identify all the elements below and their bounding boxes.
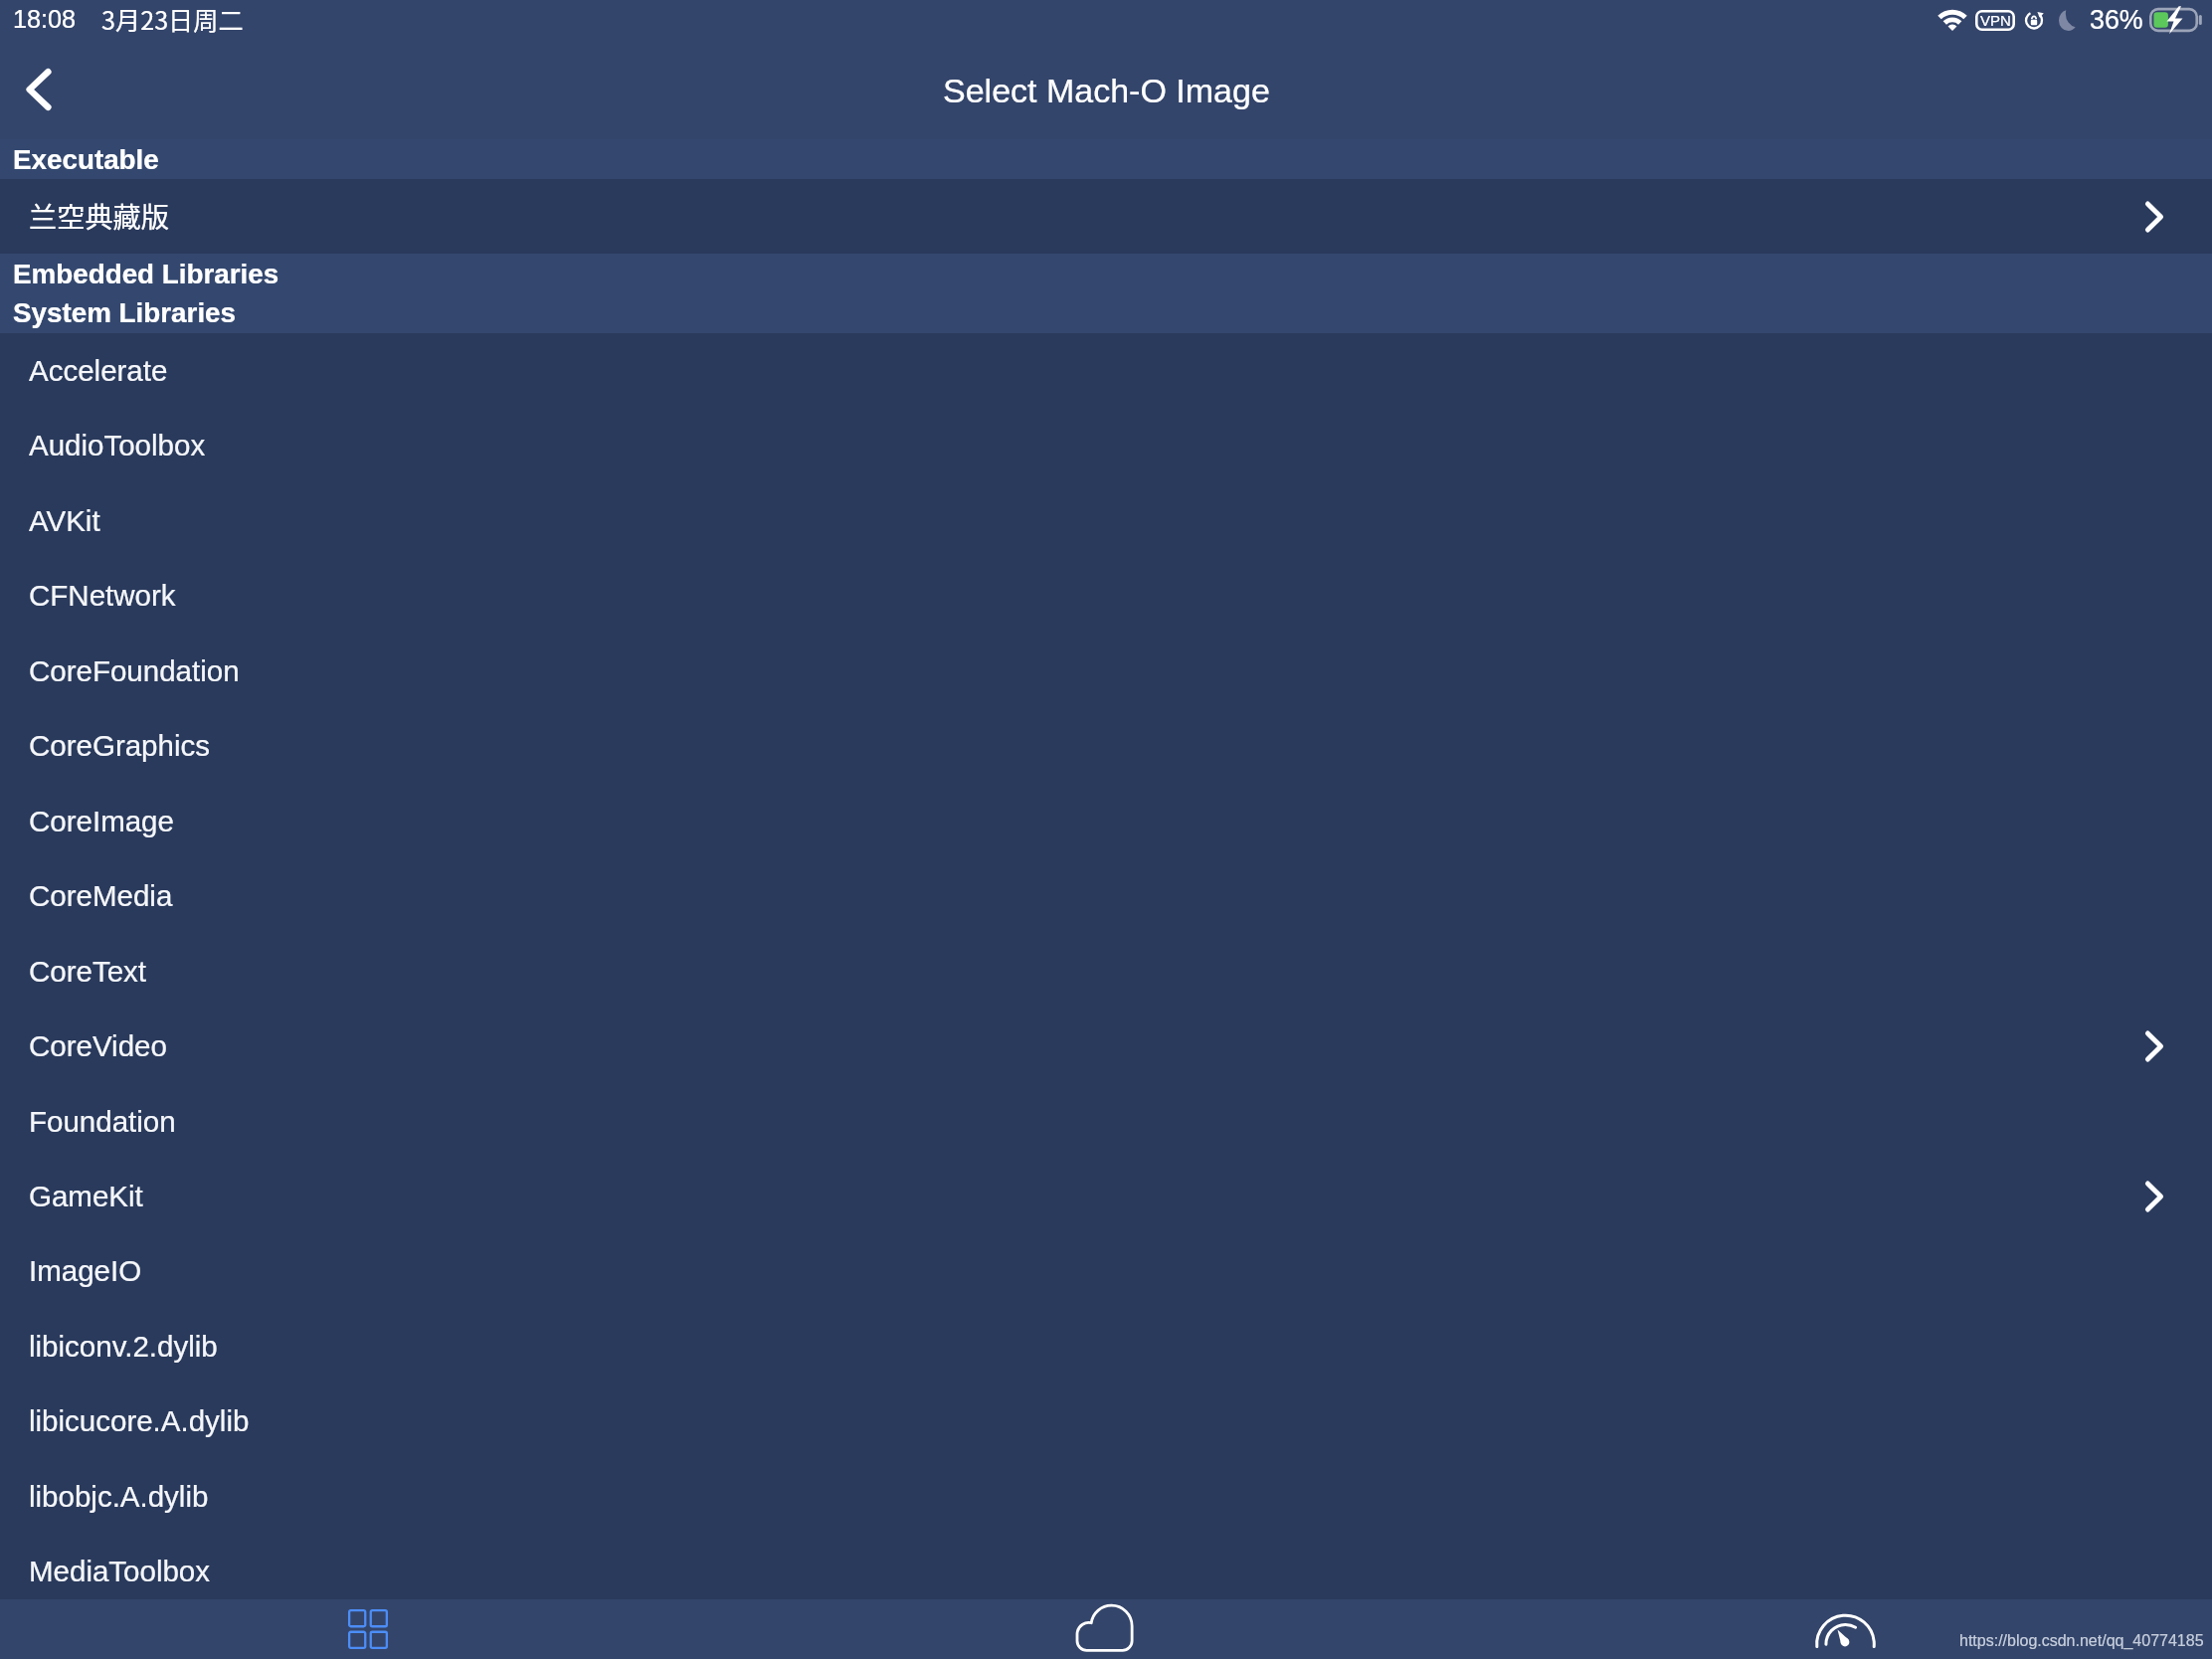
staticText: CoreImage (29, 805, 174, 837)
button[interactable]: 兰空典藏版 (0, 179, 2212, 254)
button[interactable]: libiconv.2.dylib (0, 1309, 2212, 1383)
button[interactable]: CoreGraphics (0, 708, 2212, 783)
button[interactable]: Performance (1810, 1599, 1880, 1659)
staticText: MediaToolbox (29, 1555, 211, 1587)
staticText: 18:08 (13, 5, 77, 33)
staticText: CoreMedia (29, 879, 173, 912)
staticText: CoreVideo (29, 1029, 167, 1062)
button[interactable]: CoreText (0, 934, 2212, 1009)
button[interactable]: CoreImage (0, 784, 2212, 858)
staticText: Select Mach-O Image (943, 72, 1270, 109)
staticText: CoreText (29, 955, 147, 988)
staticText: libicucore.A.dylib (29, 1404, 250, 1437)
staticText: libiconv.2.dylib (29, 1330, 218, 1363)
staticText: CoreGraphics (29, 729, 210, 762)
button[interactable]: MediaToolbox (0, 1534, 2212, 1608)
button[interactable]: AudioToolbox (0, 408, 2212, 482)
staticText: 36% (2090, 5, 2143, 35)
button[interactable]: Accelerate (0, 333, 2212, 408)
button[interactable]: Foundation (0, 1084, 2212, 1159)
staticText: libobjc.A.dylib (29, 1480, 209, 1513)
staticText: VPN (1980, 12, 2011, 29)
button[interactable]: ImageIO (0, 1233, 2212, 1308)
button[interactable]: GameKit (0, 1159, 2212, 1233)
button[interactable]: CoreMedia (0, 858, 2212, 933)
staticText: 兰空典藏版 (29, 195, 169, 236)
button[interactable]: libicucore.A.dylib (0, 1383, 2212, 1458)
staticText: ImageIO (29, 1254, 142, 1287)
staticText: Executable (13, 144, 159, 175)
staticText: Embedded Libraries (13, 259, 279, 289)
button[interactable]: CoreFoundation (0, 634, 2212, 708)
staticText: System Libraries (13, 297, 237, 328)
button[interactable]: CFNetwork (0, 558, 2212, 633)
button[interactable]: Back (4, 55, 74, 124)
button[interactable]: CoreVideo (0, 1009, 2212, 1083)
staticText: 3月23日周二 (101, 1, 244, 37)
staticText: AudioToolbox (29, 429, 206, 461)
button[interactable]: Cloud (1071, 1599, 1141, 1659)
staticText: AVKit (29, 504, 100, 537)
button[interactable]: libobjc.A.dylib (0, 1459, 2212, 1534)
staticText: Accelerate (29, 354, 168, 387)
staticText: CoreFoundation (29, 654, 240, 687)
staticText: https://blog.csdn.net/qq_40774185 (1959, 1632, 2204, 1650)
staticText: CFNetwork (29, 579, 176, 612)
button[interactable]: Grid view (338, 1599, 398, 1659)
staticText: GameKit (29, 1180, 143, 1212)
button[interactable]: AVKit (0, 483, 2212, 558)
staticText: Foundation (29, 1105, 176, 1138)
